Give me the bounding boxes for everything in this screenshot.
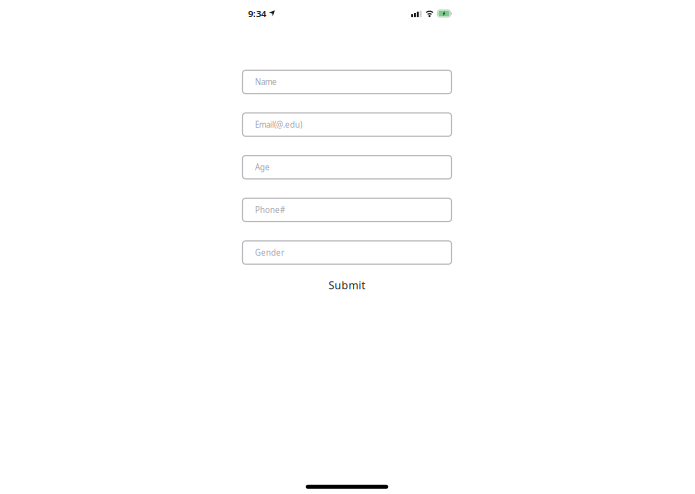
staticText: Gender xyxy=(255,247,284,258)
button[interactable]: Gender xyxy=(242,241,451,264)
staticText: Name xyxy=(255,77,277,87)
staticText: Phone# xyxy=(255,205,285,215)
button[interactable]: Submit xyxy=(319,273,374,297)
button[interactable]: Email(@.edu) xyxy=(242,113,451,136)
staticText: Submit xyxy=(328,278,365,292)
staticText: Email(@.edu) xyxy=(255,119,302,130)
staticText: Age xyxy=(255,162,270,172)
button[interactable]: Phone# xyxy=(242,198,451,221)
button[interactable]: Age xyxy=(242,156,451,179)
staticText: 9:34 xyxy=(248,7,266,20)
button[interactable]: Name xyxy=(242,70,451,94)
